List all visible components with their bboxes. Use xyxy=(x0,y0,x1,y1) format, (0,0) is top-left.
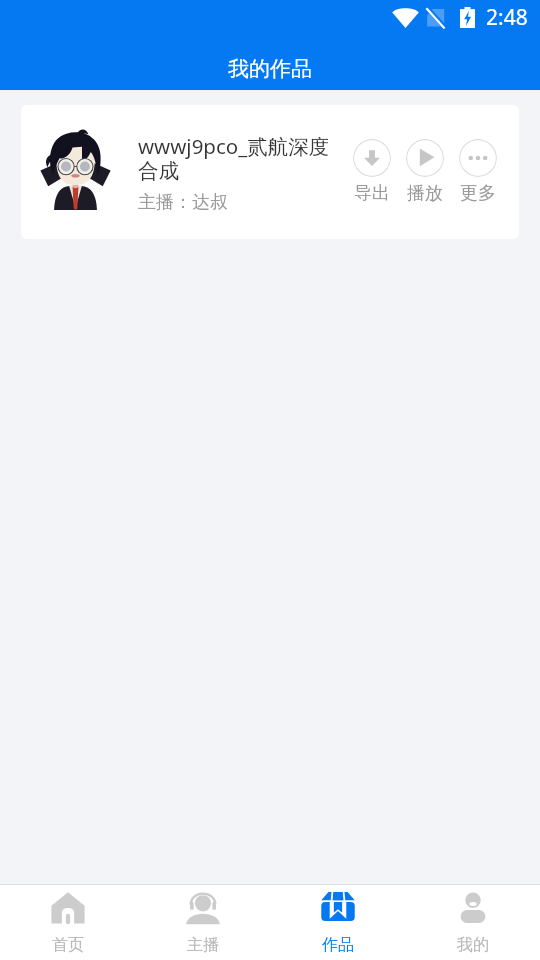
staticText: 主播 xyxy=(187,935,219,955)
button[interactable]: 首页 xyxy=(0,890,135,955)
staticText: 主播：达叔 xyxy=(138,191,228,214)
staticText: 作品 xyxy=(322,935,354,955)
button[interactable]: wwwj9pco_贰航深度合成 xyxy=(21,105,519,239)
staticText: wwwj9pco_贰航深度合成 xyxy=(138,132,343,184)
staticText: 导出 xyxy=(354,182,390,205)
button[interactable]: 主播 xyxy=(135,890,270,955)
button[interactable]: 播放 Play xyxy=(406,139,444,205)
staticText: 我的 xyxy=(457,935,489,955)
button[interactable]: 我的 xyxy=(405,890,540,955)
staticText: 我的作品 xyxy=(228,56,312,82)
button[interactable]: 导出 Export xyxy=(353,139,391,205)
staticText: 首页 xyxy=(52,935,84,955)
staticText: 2:48 xyxy=(486,3,528,32)
button[interactable]: 更多 More xyxy=(459,139,497,205)
staticText: 更多 xyxy=(460,182,496,205)
button[interactable]: 作品 xyxy=(270,890,405,955)
staticText: 播放 xyxy=(407,182,443,205)
